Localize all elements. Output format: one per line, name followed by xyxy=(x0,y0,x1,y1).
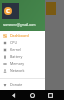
staticText: Memory xyxy=(10,61,25,66)
button[interactable]: Recents xyxy=(46,91,55,100)
staticText: Kernel xyxy=(10,47,21,52)
staticText: CPU xyxy=(10,40,18,45)
staticText: Battery xyxy=(10,54,23,59)
staticText: someone@gmail.com xyxy=(3,23,36,27)
staticText: Donate xyxy=(10,82,23,87)
button[interactable]: Dashboard xyxy=(0,32,45,39)
button[interactable]: Kernel xyxy=(0,46,45,53)
button[interactable]: Home xyxy=(28,91,37,100)
staticText: Network xyxy=(10,68,25,73)
button[interactable]: Battery xyxy=(0,53,45,60)
button[interactable]: Donate xyxy=(0,81,45,88)
button[interactable]: Memory xyxy=(0,60,45,67)
staticText: C xyxy=(6,7,10,15)
button[interactable]: Network xyxy=(0,67,45,74)
button[interactable]: CPU xyxy=(0,39,45,46)
button[interactable]: Back xyxy=(9,91,18,100)
staticText: Dashboard xyxy=(10,33,29,38)
